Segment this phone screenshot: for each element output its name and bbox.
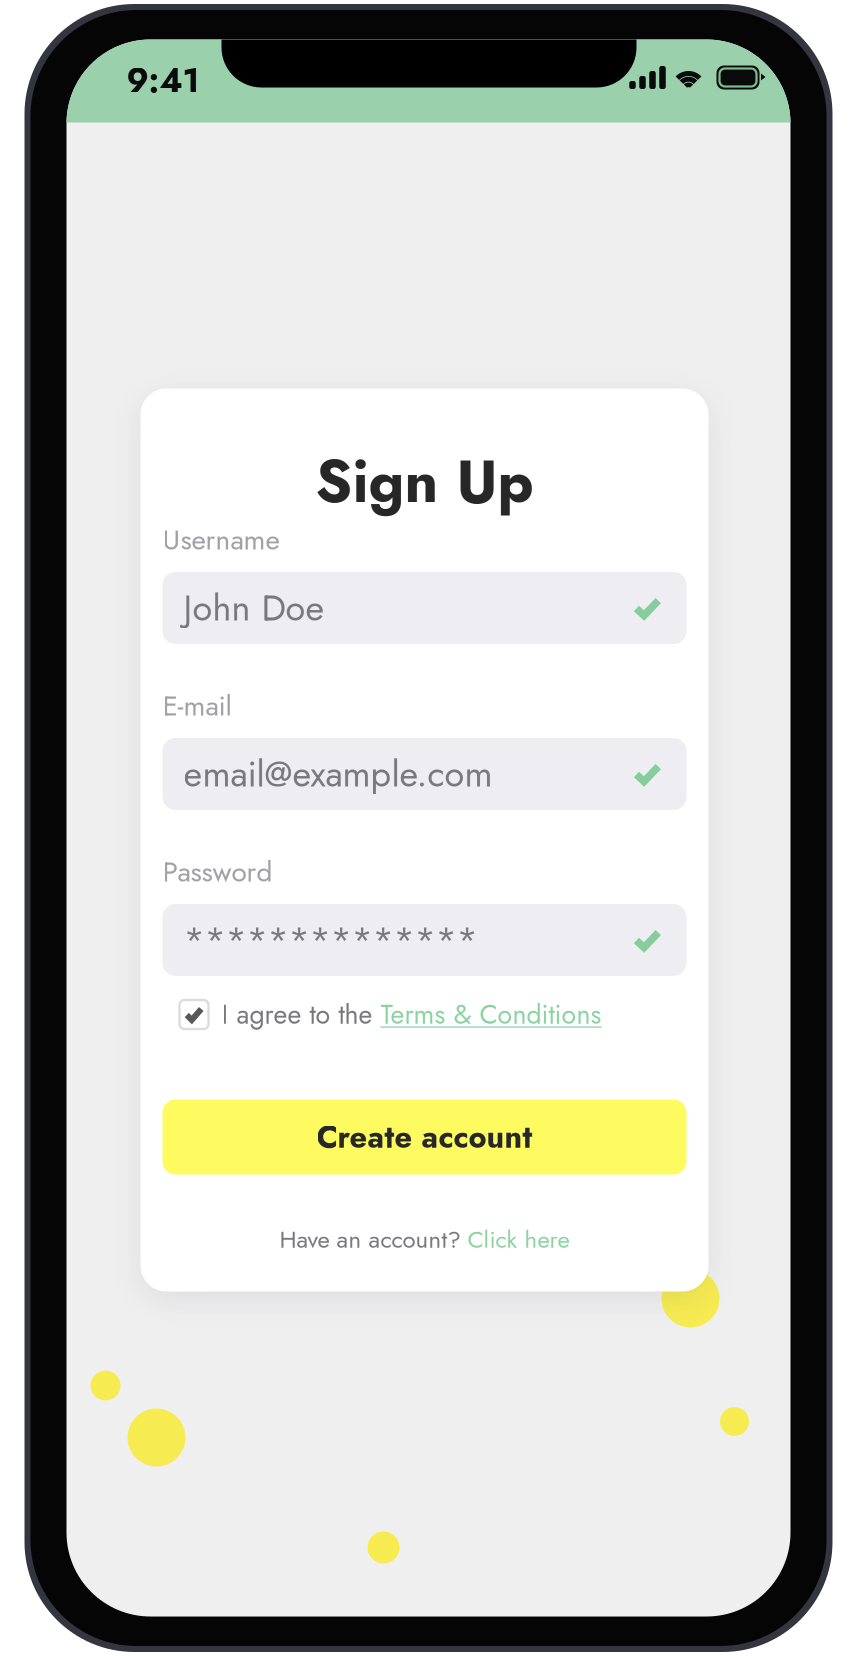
button[interactable]: I agree to the: [179, 995, 703, 1033]
staticText: Sign Up: [315, 439, 533, 524]
staticText: E-mail: [162, 685, 231, 726]
button[interactable]: Have an account?: [140, 1220, 708, 1258]
staticText: Username: [162, 519, 279, 560]
staticText: Have an account?: [279, 1222, 467, 1257]
staticText: email@example.com: [183, 748, 492, 800]
staticText: Password: [162, 851, 272, 892]
staticText: Click here: [467, 1222, 569, 1257]
staticText: I agree to the: [221, 995, 380, 1034]
staticText: Create account: [316, 1115, 532, 1159]
button[interactable]: Create account: [162, 1099, 686, 1174]
staticText: **************: [183, 914, 477, 966]
staticText: Terms & Conditions: [380, 995, 601, 1034]
staticText: John Doe: [183, 582, 324, 634]
staticText: 9:41: [126, 56, 199, 105]
